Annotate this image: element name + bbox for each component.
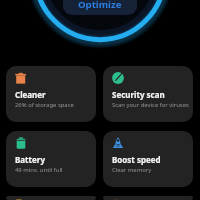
button[interactable]: Security scan [103,66,193,122]
staticText: Battery [15,154,45,165]
staticText: Scan your device for viruses [112,101,189,109]
button[interactable]: Boost speed [103,131,193,187]
button[interactable]: Battery [6,131,96,187]
staticText: Optimize [78,0,122,11]
button[interactable]: Storage [6,196,96,200]
button[interactable]: Optimize [63,0,137,15]
button[interactable]: Apps [103,196,193,200]
button[interactable]: Cleaner [6,66,96,122]
staticText: Security scan [112,89,165,100]
staticText: Boost speed [112,154,161,165]
staticText: Clear memory [112,166,152,174]
staticText: 26% of storage space [15,101,74,109]
staticText: 49 mins. until full [15,166,63,174]
staticText: Cleaner [15,89,46,100]
